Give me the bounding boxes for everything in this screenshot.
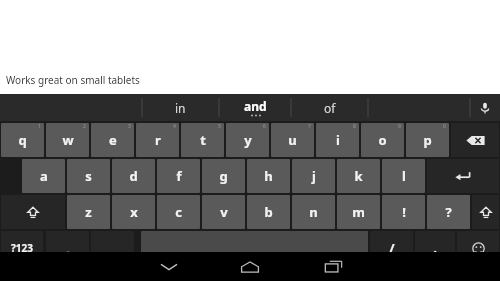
button[interactable]: _ — [91, 231, 134, 265]
staticText: . — [433, 239, 437, 257]
staticText: 8 — [353, 123, 356, 130]
staticText: o — [378, 131, 387, 149]
button[interactable]: Shift — [472, 195, 499, 229]
staticText: a — [40, 167, 48, 185]
button[interactable]: s — [67, 159, 110, 193]
staticText: ? — [445, 203, 452, 221]
button[interactable]: ?123 — [1, 231, 43, 265]
button[interactable]: t — [181, 123, 224, 157]
staticText: z — [85, 203, 92, 221]
staticText: 4 — [173, 123, 176, 130]
button[interactable]: Voice input — [470, 94, 500, 121]
staticText: j — [312, 167, 316, 185]
staticText: h — [264, 167, 273, 185]
staticText: v — [220, 203, 228, 221]
button[interactable]: o — [361, 123, 404, 157]
staticText: / — [389, 239, 395, 257]
staticText: w — [62, 131, 74, 149]
staticText: 6 — [263, 123, 266, 130]
staticText: r — [155, 131, 161, 149]
button[interactable]: , — [46, 231, 89, 265]
button[interactable]: f — [157, 159, 200, 193]
staticText: ! — [402, 203, 406, 221]
button[interactable]: h — [247, 159, 290, 193]
staticText: y — [244, 131, 252, 149]
button[interactable]: q — [1, 123, 44, 157]
button[interactable]: in — [142, 94, 219, 121]
staticText: and — [244, 98, 267, 114]
button[interactable]: m — [337, 195, 380, 229]
staticText: n — [309, 203, 318, 221]
staticText: x — [130, 203, 138, 221]
staticText: c — [175, 203, 182, 221]
button[interactable]: Home — [226, 252, 274, 281]
button[interactable]: l — [382, 159, 425, 193]
staticText: 2 — [83, 123, 86, 130]
button[interactable]: y — [226, 123, 269, 157]
staticText: of — [324, 100, 336, 116]
button[interactable]: Enter — [427, 159, 499, 193]
button[interactable]: g — [202, 159, 245, 193]
staticText: e — [109, 131, 117, 149]
staticText: t — [200, 131, 206, 149]
button[interactable]: j — [292, 159, 335, 193]
button[interactable]: Emoji — [457, 231, 499, 265]
staticText: u — [288, 131, 297, 149]
staticText: ?123 — [11, 241, 33, 255]
button[interactable]: Shift — [1, 195, 65, 229]
staticText: Works great on small tablets — [6, 73, 140, 87]
button[interactable]: ? — [427, 195, 470, 229]
staticText: l — [402, 167, 406, 185]
button[interactable]: d — [112, 159, 155, 193]
staticText: b — [264, 203, 273, 221]
button[interactable]: w — [46, 123, 89, 157]
staticText: _ — [110, 239, 116, 257]
button[interactable]: Backspace — [451, 123, 499, 157]
button[interactable]: Space — [141, 231, 368, 265]
staticText: in — [175, 100, 186, 116]
staticText: k — [354, 167, 363, 185]
staticText: 0 — [443, 123, 446, 130]
staticText: 5 — [218, 123, 221, 130]
button[interactable]: r — [136, 123, 179, 157]
staticText: s — [85, 167, 92, 185]
staticText: i — [336, 131, 340, 149]
staticText: 9 — [398, 123, 401, 130]
button[interactable]: / — [370, 231, 413, 265]
button[interactable]: z — [67, 195, 110, 229]
staticText: d — [129, 167, 138, 185]
button[interactable]: c — [157, 195, 200, 229]
button[interactable]: i — [316, 123, 359, 157]
button[interactable]: x — [112, 195, 155, 229]
button[interactable]: b — [247, 195, 290, 229]
button[interactable]: p — [406, 123, 449, 157]
button[interactable]: Hide keyboard — [145, 252, 193, 281]
button[interactable]: and — [219, 94, 291, 121]
staticText: g — [219, 167, 228, 185]
button[interactable]: . — [415, 231, 455, 265]
staticText: 7 — [308, 123, 311, 130]
button[interactable]: ! — [382, 195, 425, 229]
button[interactable]: a — [22, 159, 65, 193]
button[interactable]: v — [202, 195, 245, 229]
button[interactable]: of — [291, 94, 368, 121]
button[interactable]: e — [91, 123, 134, 157]
staticText: 3 — [128, 123, 131, 130]
staticText: f — [176, 167, 182, 185]
button[interactable]: Recent apps — [309, 252, 357, 281]
button[interactable]: n — [292, 195, 335, 229]
button[interactable]: k — [337, 159, 380, 193]
staticText: , — [66, 239, 70, 257]
staticText: p — [423, 131, 432, 149]
button[interactable]: u — [271, 123, 314, 157]
staticText: 1 — [38, 123, 41, 130]
staticText: q — [18, 131, 27, 149]
staticText: m — [352, 203, 365, 221]
